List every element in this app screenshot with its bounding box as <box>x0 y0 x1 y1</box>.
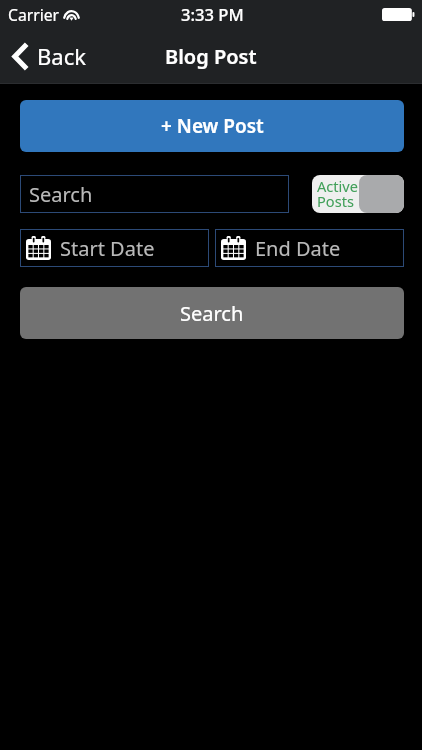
staticText: Search <box>29 181 93 208</box>
staticText: + New Post <box>161 113 264 139</box>
staticText: Back <box>37 41 86 71</box>
staticText: Search <box>180 300 244 327</box>
staticText: Blog Post <box>165 43 257 70</box>
staticText: Start Date <box>60 235 155 262</box>
button[interactable]: Search <box>20 287 404 339</box>
button[interactable]: Search <box>20 175 289 213</box>
other: Back <box>12 42 29 71</box>
button[interactable]: Active Posts <box>312 175 404 213</box>
other: Battery <box>382 8 415 21</box>
staticText: Active Posts <box>317 176 359 212</box>
button[interactable]: + New Post <box>20 100 404 152</box>
button[interactable]: End Date <box>215 229 404 267</box>
staticText: 3:33 PM <box>181 3 244 26</box>
staticText: Carrier <box>8 4 60 25</box>
button[interactable]: Back <box>0 35 96 77</box>
staticText: End Date <box>255 235 341 262</box>
button[interactable]: Start Date <box>20 229 209 267</box>
